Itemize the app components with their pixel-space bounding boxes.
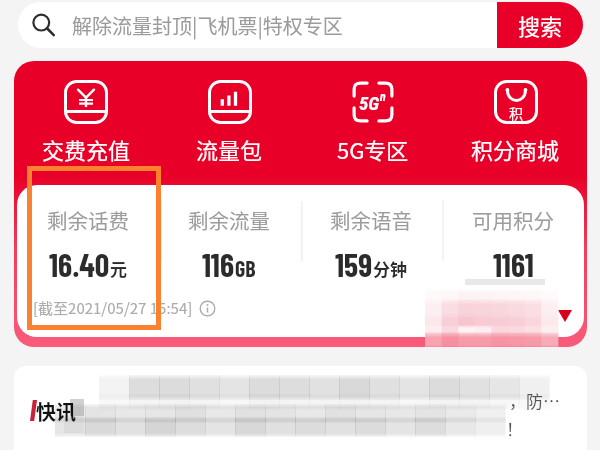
staticText: 5G专区 xyxy=(337,133,409,165)
staticText: 交费充值 xyxy=(42,133,131,165)
button[interactable]: [截至2021/05/27 15:54] xyxy=(33,295,216,321)
staticText: 可用积分 xyxy=(472,205,554,235)
staticText: 搜索 xyxy=(518,9,563,41)
button[interactable]: 5G专区 xyxy=(301,61,444,165)
staticText: 解除流量封顶|飞机票|特权专区 xyxy=(72,11,343,40)
other: 流量包 xyxy=(208,80,252,124)
staticText: ！ xyxy=(506,416,523,441)
other: 积分商城 xyxy=(494,80,538,124)
staticText: 剩余话费 xyxy=(47,205,129,235)
staticText: 快讯 xyxy=(36,397,76,426)
staticText: 16.40 xyxy=(49,245,110,283)
staticText: 剩余流量 xyxy=(188,205,270,235)
staticText: 分钟 xyxy=(373,256,407,281)
staticText: 元 xyxy=(110,256,127,281)
button[interactable]: 展开 xyxy=(555,306,575,326)
button[interactable]: 搜索 xyxy=(18,2,583,48)
button[interactable]: 剩余话费 xyxy=(17,185,158,283)
staticText: 1161 xyxy=(493,245,534,283)
other: 说明 xyxy=(199,300,216,317)
button[interactable]: 剩余流量 xyxy=(158,185,300,283)
staticText: 剩余语音 xyxy=(330,205,412,235)
button[interactable]: 交费充值 xyxy=(14,61,158,165)
button[interactable]: 积分商城 xyxy=(444,61,587,165)
button[interactable]: 剩余语音 xyxy=(300,185,442,283)
button[interactable]: 可用积分 xyxy=(442,185,584,283)
other: 交费充值 xyxy=(64,80,108,124)
staticText: 5G xyxy=(359,92,380,114)
button[interactable]: 搜索 xyxy=(497,2,583,48)
staticText: 积分商城 xyxy=(471,133,560,165)
staticText: ，防… xyxy=(509,388,560,413)
button[interactable]: 流量包 xyxy=(158,61,301,165)
other: 5G专区 xyxy=(351,80,395,124)
staticText: 159 xyxy=(335,245,373,283)
staticText: 积 xyxy=(509,103,523,123)
staticText: 流量包 xyxy=(196,133,263,165)
staticText: GB xyxy=(235,255,256,281)
staticText: n xyxy=(380,90,386,104)
other: 搜索 xyxy=(30,13,54,37)
staticText: [截至2021/05/27 15:54] xyxy=(33,297,193,319)
staticText: 116 xyxy=(202,245,235,283)
button[interactable]: 快讯 xyxy=(14,366,587,450)
